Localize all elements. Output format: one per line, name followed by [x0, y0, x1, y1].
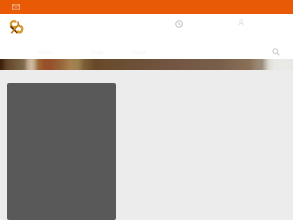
button[interactable]: Search — [268, 44, 284, 60]
button[interactable]: Home — [4, 15, 28, 39]
button[interactable]: Account — [232, 14, 251, 33]
button[interactable]: History — [169, 14, 188, 33]
